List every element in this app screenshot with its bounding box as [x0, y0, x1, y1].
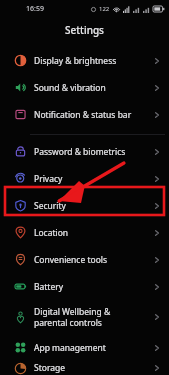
- button[interactable]: Display & brightness: [0, 47, 169, 74]
- button[interactable]: Security: [0, 192, 169, 219]
- staticText: App management: [34, 342, 143, 354]
- button[interactable]: App management: [0, 334, 169, 361]
- staticText: Notification & status bar: [34, 109, 143, 121]
- staticText: Settings: [65, 23, 104, 37]
- button[interactable]: Sound & vibration: [0, 74, 169, 101]
- button[interactable]: Digital Wellbeing & parental controls: [0, 300, 169, 334]
- button[interactable]: Storage: [0, 361, 169, 375]
- staticText: Display & brightness: [34, 55, 143, 67]
- staticText: Security: [34, 200, 143, 212]
- staticText: Digital Wellbeing & parental controls: [34, 306, 143, 328]
- button[interactable]: Password & biometrics: [0, 138, 169, 165]
- staticText: Battery: [34, 281, 143, 293]
- staticText: Privacy: [34, 173, 143, 185]
- button[interactable]: Battery: [0, 273, 169, 300]
- staticText: Sound & vibration: [34, 82, 143, 94]
- button[interactable]: Convenience tools: [0, 246, 169, 273]
- staticText: 16:59: [26, 4, 44, 14]
- button[interactable]: Privacy: [0, 165, 169, 192]
- staticText: 122: [99, 5, 110, 13]
- staticText: Convenience tools: [34, 254, 143, 266]
- staticText: Storage: [34, 362, 143, 374]
- button[interactable]: Location: [0, 219, 169, 246]
- staticText: Password & biometrics: [34, 146, 143, 158]
- button[interactable]: Notification & status bar: [0, 101, 169, 128]
- staticText: Location: [34, 227, 143, 239]
